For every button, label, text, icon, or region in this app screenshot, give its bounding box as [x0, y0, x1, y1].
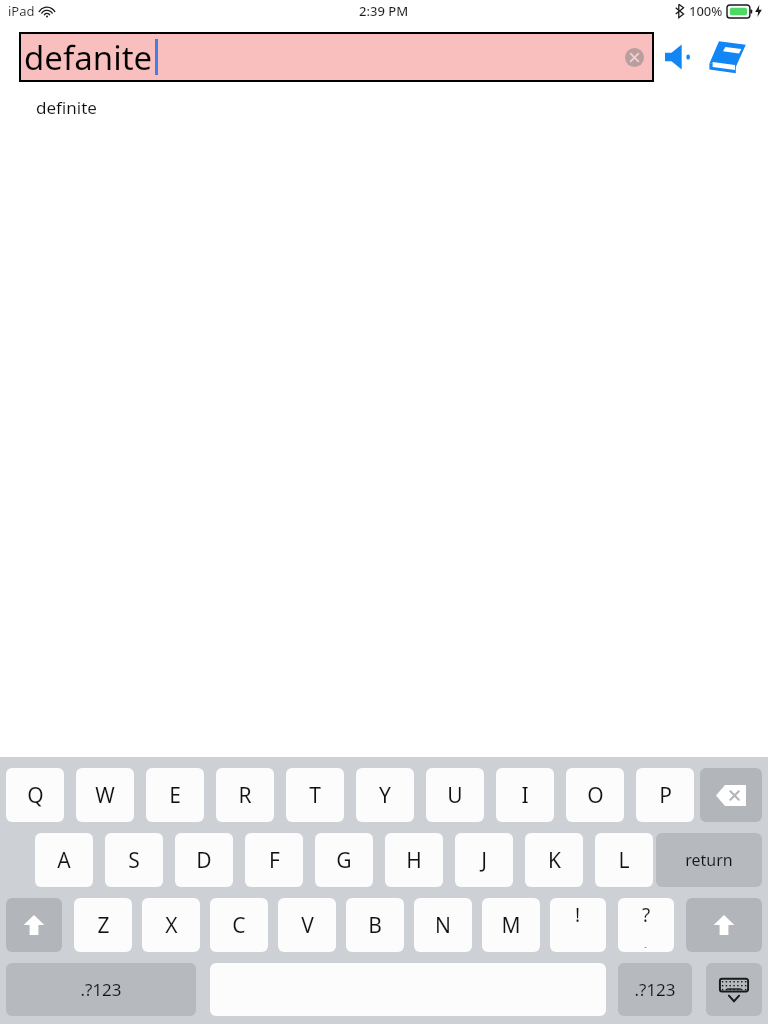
button[interactable]: M	[482, 898, 540, 952]
button[interactable]: T	[286, 768, 344, 822]
staticText: F	[269, 846, 280, 875]
staticText: P	[659, 781, 672, 810]
button[interactable]: E	[146, 768, 204, 822]
button[interactable]: X	[142, 898, 200, 952]
button[interactable]: B	[346, 898, 404, 952]
staticText: B	[368, 911, 382, 940]
button[interactable]: definite	[24, 92, 144, 122]
button[interactable]: Z	[74, 898, 132, 952]
button[interactable]: G	[315, 833, 373, 887]
button[interactable]: L	[595, 833, 653, 887]
button[interactable]: .?123	[618, 963, 692, 1016]
button[interactable]: defanite	[20, 33, 653, 81]
staticText: .?123	[634, 978, 676, 1001]
button[interactable]: Clear text	[625, 48, 644, 67]
button[interactable]: H	[385, 833, 443, 887]
staticText: G	[336, 846, 352, 875]
staticText: T	[309, 781, 321, 810]
staticText: !	[575, 902, 581, 928]
button[interactable]: Shift	[686, 898, 762, 952]
button[interactable]: Dictionary	[704, 34, 750, 80]
button[interactable]: A	[35, 833, 93, 887]
staticText: K	[548, 846, 561, 875]
staticText: R	[238, 781, 252, 810]
button[interactable]: .?123	[6, 963, 196, 1016]
button[interactable]: return	[656, 833, 762, 887]
button[interactable]: I	[496, 768, 554, 822]
staticText: .?123	[80, 978, 122, 1001]
button[interactable]: Hide keyboard	[706, 963, 762, 1016]
staticText: N	[435, 911, 451, 940]
staticText: X	[165, 911, 178, 940]
button[interactable]: N	[414, 898, 472, 952]
button[interactable]: C	[210, 898, 268, 952]
staticText: Z	[97, 911, 110, 940]
staticText: definite	[36, 96, 97, 119]
staticText: E	[169, 781, 181, 810]
button[interactable]: ?	[618, 898, 674, 952]
staticText: Q	[27, 781, 44, 810]
button[interactable]: P	[636, 768, 694, 822]
button[interactable]: O	[566, 768, 624, 822]
staticText: J	[481, 846, 487, 875]
staticText: L	[618, 846, 630, 875]
button[interactable]: !	[550, 898, 606, 952]
staticText: 2:39 PM	[359, 2, 409, 20]
staticText: U	[447, 781, 463, 810]
staticText: S	[128, 846, 140, 875]
staticText: O	[587, 781, 604, 810]
button[interactable]: Y	[356, 768, 414, 822]
button[interactable]: K	[525, 833, 583, 887]
button[interactable]: F	[245, 833, 303, 887]
button[interactable]: J	[455, 833, 513, 887]
button[interactable]: D	[175, 833, 233, 887]
staticText: return	[685, 849, 733, 871]
staticText: iPad	[8, 2, 35, 20]
staticText: ?	[642, 902, 651, 928]
button[interactable]: S	[105, 833, 163, 887]
button[interactable]: Shift	[6, 898, 62, 952]
staticText: W	[95, 781, 115, 810]
button[interactable]: V	[278, 898, 336, 952]
button[interactable]: Q	[6, 768, 64, 822]
staticText: Y	[379, 781, 391, 810]
staticText: D	[196, 846, 212, 875]
staticText: M	[501, 911, 521, 940]
staticText: .	[643, 930, 649, 948]
button[interactable]: R	[216, 768, 274, 822]
button[interactable]: Pronounce	[662, 38, 700, 76]
staticText: V	[301, 911, 314, 940]
staticText: defanite	[24, 35, 153, 80]
staticText: I	[521, 781, 529, 810]
staticText: H	[406, 846, 422, 875]
staticText: 100%	[689, 2, 723, 20]
staticText: C	[232, 911, 246, 940]
button[interactable]: Backspace	[700, 768, 762, 822]
button[interactable]: U	[426, 768, 484, 822]
button[interactable]: W	[76, 768, 134, 822]
staticText: A	[57, 846, 71, 875]
